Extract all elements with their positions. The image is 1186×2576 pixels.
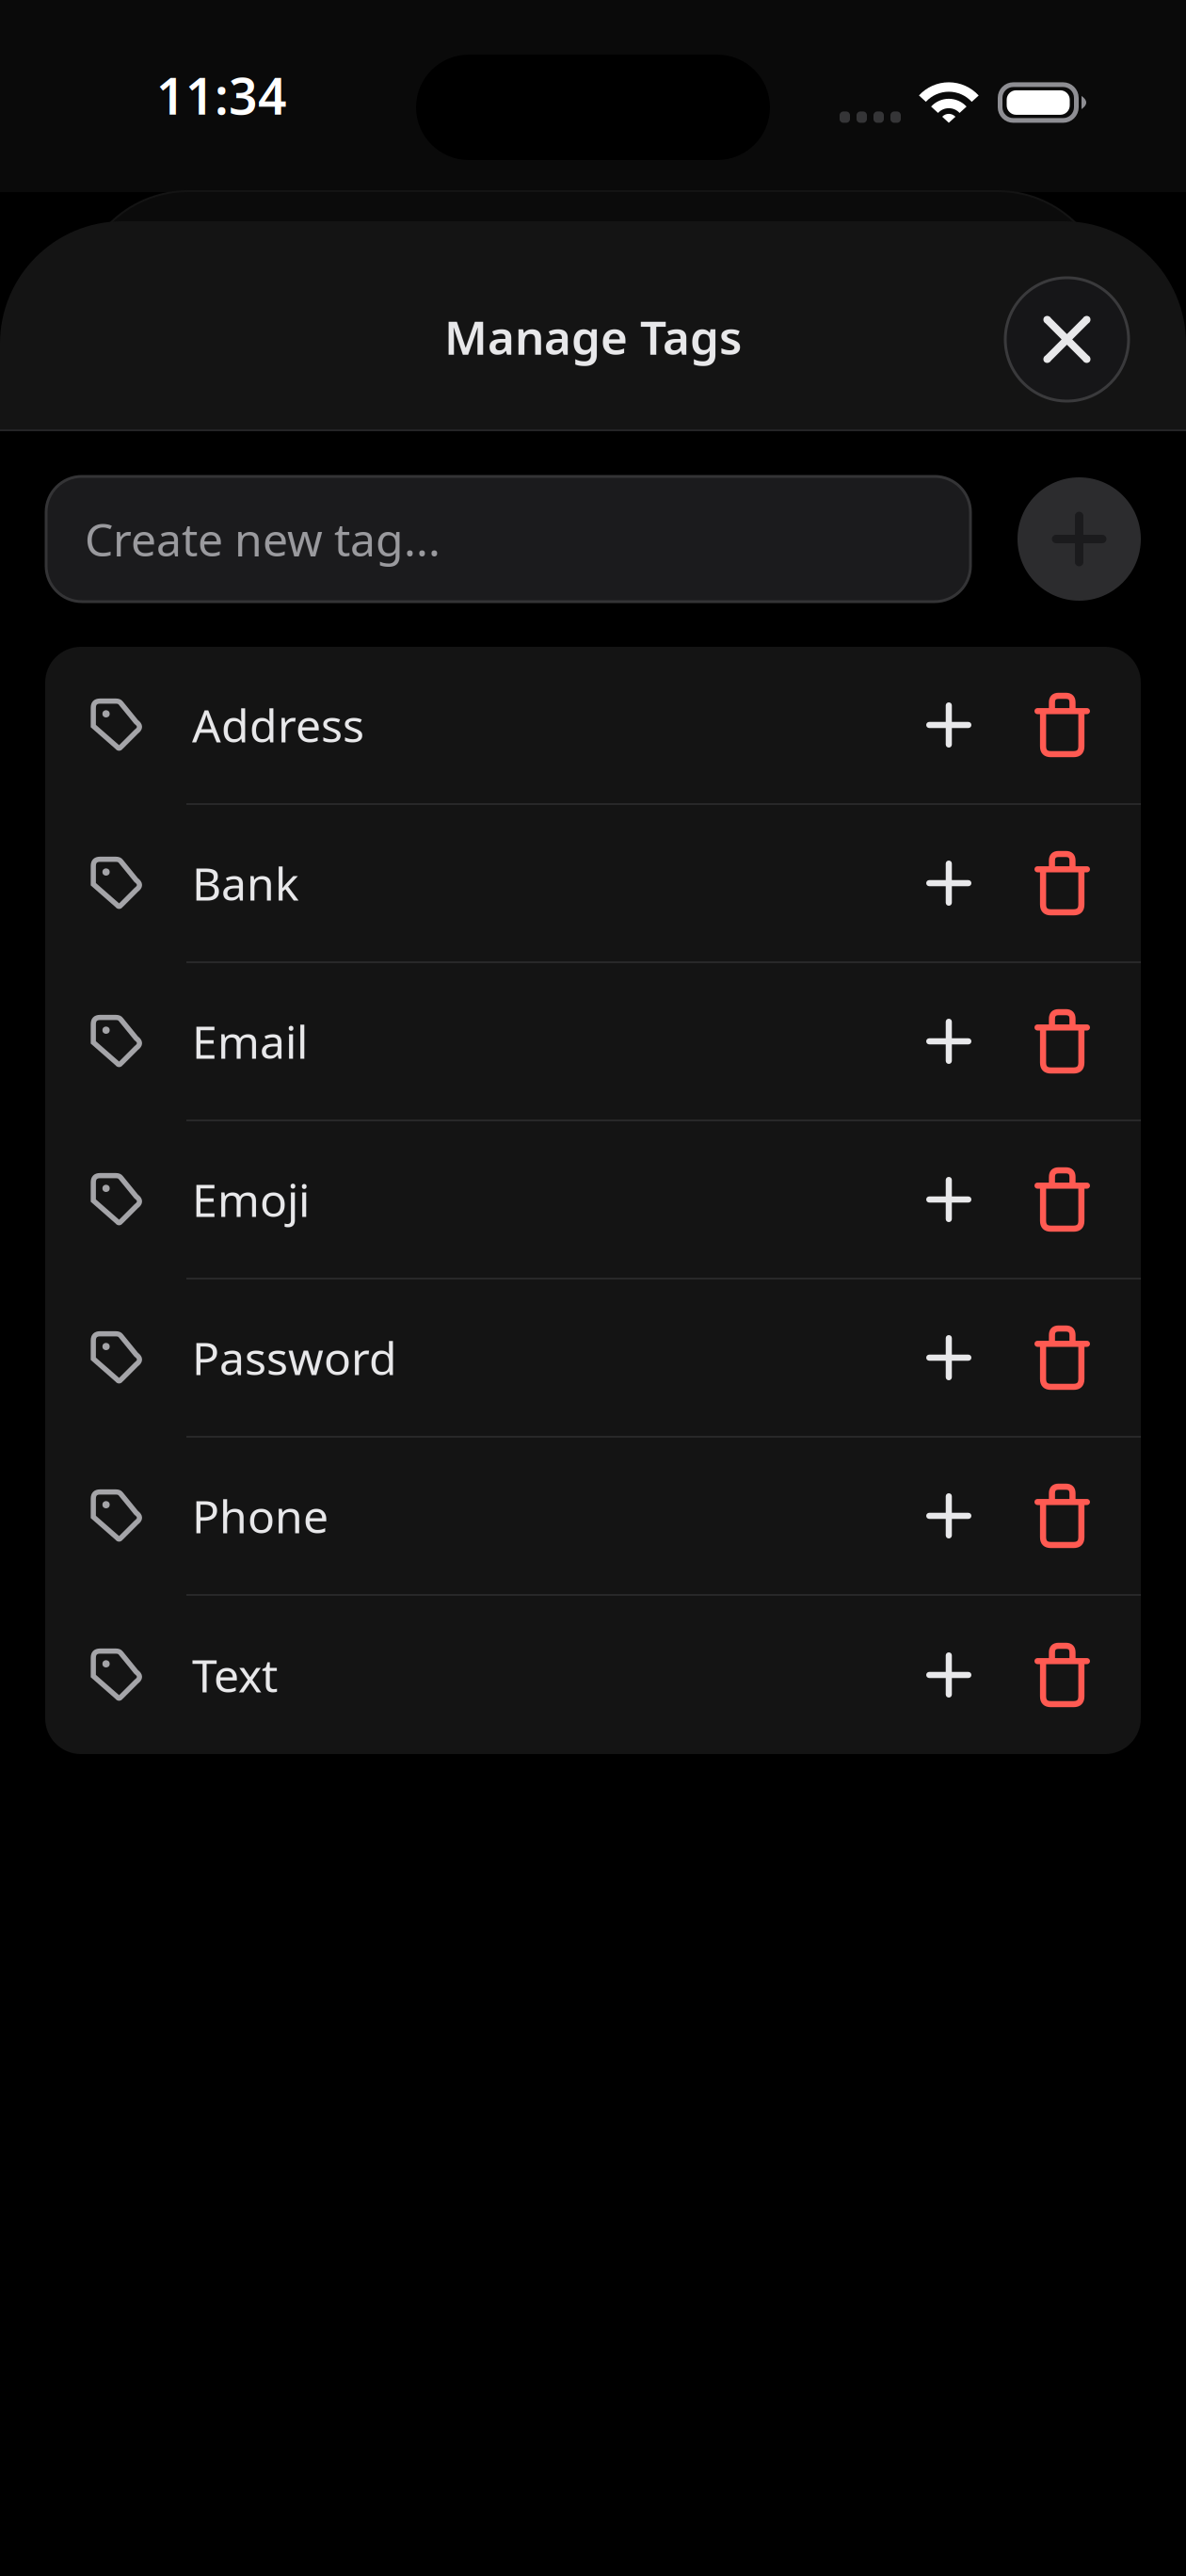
staticText: Text: [192, 1645, 278, 1705]
button[interactable]: Create new tag...: [46, 476, 970, 602]
button[interactable]: Add to Emoji: [889, 1121, 1008, 1278]
button[interactable]: Delete Email: [1008, 963, 1116, 1119]
button[interactable]: Delete Emoji: [1008, 1121, 1116, 1278]
staticText: Email: [192, 1011, 308, 1071]
staticText: Address: [192, 695, 364, 755]
button[interactable]: Delete Address: [1008, 647, 1116, 803]
button[interactable]: Delete Bank: [1008, 805, 1116, 961]
button[interactable]: Add to Password: [889, 1280, 1008, 1436]
staticText: Password: [192, 1328, 397, 1388]
button[interactable]: Create tag: [1018, 477, 1141, 601]
staticText: Emoji: [192, 1169, 310, 1229]
button[interactable]: Add to Bank: [889, 805, 1008, 961]
button[interactable]: Delete Text: [1008, 1597, 1116, 1753]
button[interactable]: Add to Address: [889, 647, 1008, 803]
staticText: Bank: [192, 853, 299, 913]
button[interactable]: Delete Password: [1008, 1280, 1116, 1436]
button[interactable]: Add to Text: [889, 1597, 1008, 1753]
staticText: 11:34: [156, 62, 287, 128]
staticText: Create new tag...: [85, 509, 441, 569]
button[interactable]: Add to Phone: [889, 1438, 1008, 1594]
staticText: Manage Tags: [444, 306, 742, 367]
button[interactable]: Delete Phone: [1008, 1438, 1116, 1594]
staticText: Phone: [192, 1486, 329, 1546]
button[interactable]: Add to Email: [889, 963, 1008, 1119]
button[interactable]: Close: [1005, 278, 1129, 401]
